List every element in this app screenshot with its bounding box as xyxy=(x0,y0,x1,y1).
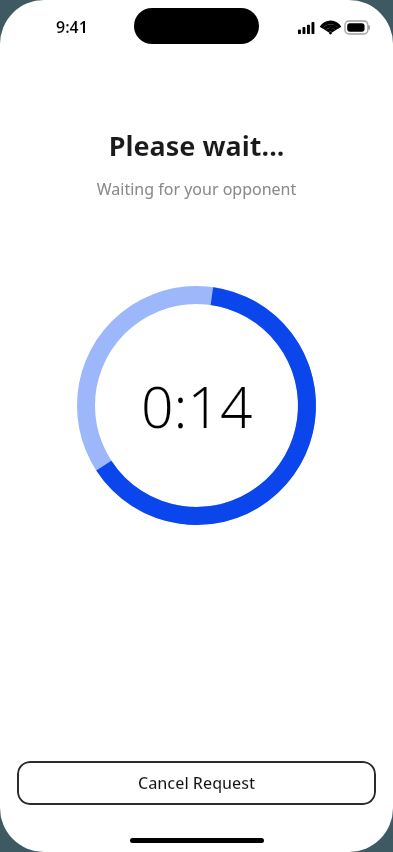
staticText: Cancel Request xyxy=(138,772,256,794)
staticText: Please wait... xyxy=(0,127,393,164)
staticText: 9:41 xyxy=(56,16,88,38)
staticText: Waiting for your opponent xyxy=(0,178,393,200)
staticText: 0:14 xyxy=(141,367,253,445)
button[interactable]: Cancel Request xyxy=(17,761,376,805)
